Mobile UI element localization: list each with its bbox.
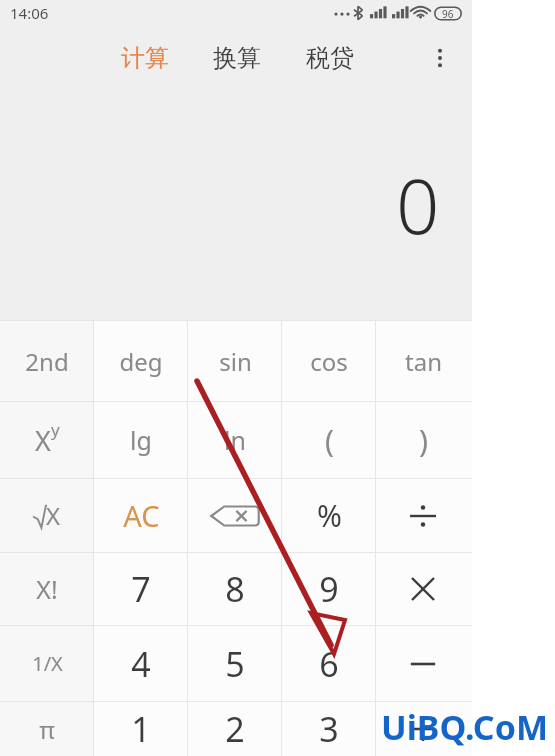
button[interactable] <box>376 702 470 756</box>
staticText: cos <box>310 345 348 378</box>
button[interactable]: 换算 <box>204 26 270 90</box>
button[interactable]: sin <box>188 321 282 401</box>
staticText: ln <box>224 423 246 457</box>
button[interactable]: 3 <box>282 702 376 756</box>
button[interactable] <box>376 553 470 625</box>
staticText: 2 <box>225 706 245 752</box>
staticText: ( <box>325 420 334 461</box>
button[interactable]: X! <box>0 553 94 625</box>
button[interactable]: 计算 <box>112 26 178 90</box>
button[interactable]: 1 <box>94 702 188 756</box>
staticText: AC <box>123 496 160 535</box>
staticText: 9 <box>319 566 339 612</box>
button[interactable]: 5 <box>188 626 282 701</box>
button[interactable]: More options <box>414 26 466 90</box>
button[interactable]: % <box>282 479 376 552</box>
button[interactable] <box>376 479 470 552</box>
staticText: X <box>46 499 61 532</box>
button[interactable]: cos <box>282 321 376 401</box>
other: Backspace <box>208 499 262 533</box>
button[interactable]: π <box>0 702 94 756</box>
staticText: 1 <box>131 706 151 752</box>
button[interactable]: 4 <box>94 626 188 701</box>
staticText: 3 <box>319 706 339 752</box>
staticText: % <box>317 495 342 536</box>
button[interactable]: 1/X <box>0 626 94 701</box>
button[interactable]: 2nd <box>0 321 94 401</box>
button[interactable]: lg <box>94 402 188 478</box>
staticText: X! <box>36 572 58 606</box>
staticText: deg <box>119 345 163 378</box>
staticText: 4 <box>131 641 151 687</box>
button[interactable]: 6 <box>282 626 376 701</box>
staticText: 计算 <box>121 43 169 73</box>
button[interactable]: 2 <box>188 702 282 756</box>
staticText: X <box>35 422 51 459</box>
button[interactable]: 税贷 <box>297 26 363 90</box>
staticText: 7 <box>131 566 151 612</box>
staticText: UiBQ.CoM <box>381 704 549 750</box>
button[interactable]: 9 <box>282 553 376 625</box>
button[interactable]: Backspace <box>188 479 282 552</box>
staticText: 2nd <box>25 345 69 378</box>
staticText: 1/X <box>32 650 63 677</box>
button[interactable]: 7 <box>94 553 188 625</box>
button[interactable]: ( <box>282 402 376 478</box>
staticText: π <box>39 713 55 746</box>
staticText: y <box>51 418 60 441</box>
button[interactable]: 8 <box>188 553 282 625</box>
button[interactable] <box>376 626 470 701</box>
staticText: 96 <box>442 7 454 21</box>
button[interactable]: tan <box>376 321 470 401</box>
staticText: lg <box>130 423 152 457</box>
staticText: sin <box>219 345 252 378</box>
button[interactable]: X <box>0 402 94 478</box>
staticText: 换算 <box>213 43 261 73</box>
staticText: 5 <box>225 641 245 687</box>
staticText: ) <box>419 420 428 461</box>
staticText: 0 <box>396 153 440 257</box>
button[interactable]: ) <box>376 402 470 478</box>
staticText: 8 <box>225 566 245 612</box>
staticText: tan <box>405 345 442 378</box>
button[interactable]: deg <box>94 321 188 401</box>
staticText: 14:06 <box>10 3 49 23</box>
button[interactable]: X <box>0 479 94 552</box>
button[interactable]: ln <box>188 402 282 478</box>
button[interactable]: AC <box>94 479 188 552</box>
staticText: 6 <box>319 641 339 687</box>
staticText: 税贷 <box>306 43 354 73</box>
